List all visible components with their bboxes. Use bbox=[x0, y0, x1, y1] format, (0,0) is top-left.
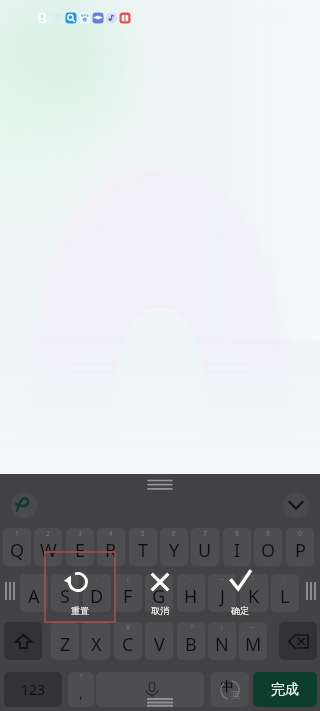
button[interactable]: Z bbox=[51, 622, 79, 660]
staticText: 7 bbox=[203, 529, 207, 538]
staticText: O bbox=[261, 538, 276, 563]
staticText: V bbox=[154, 632, 165, 657]
staticText: 取消 bbox=[151, 605, 169, 616]
staticText: M bbox=[245, 632, 262, 657]
staticText: A bbox=[28, 584, 40, 609]
button[interactable]: A bbox=[20, 574, 48, 612]
button[interactable]: 完成 bbox=[253, 672, 317, 707]
button[interactable]: V bbox=[145, 622, 173, 660]
staticText: 6 bbox=[172, 529, 176, 538]
staticText: Y bbox=[169, 538, 180, 563]
staticText: Z bbox=[60, 632, 71, 657]
button[interactable]: ! bbox=[208, 622, 236, 660]
staticText: P bbox=[295, 538, 306, 563]
staticText: F bbox=[123, 584, 133, 609]
staticText: · bbox=[96, 575, 98, 584]
staticText: Q bbox=[10, 538, 25, 563]
staticText: ? bbox=[190, 623, 193, 632]
button[interactable]: ? bbox=[177, 622, 205, 660]
staticText: · bbox=[190, 575, 192, 584]
staticText: C bbox=[122, 632, 134, 657]
button[interactable]: ! bbox=[114, 574, 142, 612]
staticText: W bbox=[40, 538, 57, 563]
staticText: · bbox=[284, 575, 286, 584]
button[interactable]: 5 bbox=[129, 528, 157, 566]
staticText: D bbox=[90, 584, 104, 609]
button[interactable]: Input method logo bbox=[11, 492, 37, 518]
button[interactable]: 9 bbox=[254, 528, 282, 566]
button[interactable]: 3 bbox=[66, 528, 94, 566]
staticText: E bbox=[75, 538, 86, 563]
button[interactable]: Space bbox=[96, 672, 204, 707]
staticText: S bbox=[60, 584, 70, 609]
button[interactable]: · bbox=[177, 574, 205, 612]
button[interactable]: 0 bbox=[286, 528, 314, 566]
staticText: I bbox=[234, 538, 241, 563]
button[interactable]: Backspace bbox=[279, 622, 317, 660]
button[interactable]: Cancel bbox=[140, 566, 180, 616]
button[interactable]: 2 bbox=[34, 528, 62, 566]
button[interactable]: 123 bbox=[4, 672, 62, 707]
staticText: ··· bbox=[250, 623, 256, 632]
staticText: 8 bbox=[235, 529, 239, 538]
staticText: 5 bbox=[141, 529, 145, 538]
staticText: 0 bbox=[298, 529, 302, 538]
button[interactable]: ° bbox=[68, 672, 94, 707]
staticText: 重置 bbox=[71, 605, 89, 616]
staticText: ! bbox=[127, 575, 129, 584]
button[interactable]: · bbox=[51, 574, 79, 612]
staticText: R bbox=[105, 538, 117, 563]
staticText: 1 bbox=[15, 529, 19, 538]
staticText: 3 bbox=[78, 529, 82, 538]
staticText: 中 bbox=[220, 678, 233, 694]
staticText: 2 bbox=[46, 529, 50, 538]
staticText: G bbox=[152, 584, 166, 609]
button[interactable]: Shift bbox=[4, 622, 42, 660]
button[interactable]: Reset bbox=[60, 566, 100, 616]
button[interactable]: · bbox=[240, 574, 268, 612]
button[interactable]: · bbox=[271, 574, 299, 612]
button[interactable]: Confirm bbox=[220, 566, 260, 616]
button[interactable]: Switch Chinese English bbox=[211, 672, 249, 707]
button[interactable]: ··· bbox=[239, 622, 267, 660]
staticText: U bbox=[198, 538, 212, 563]
staticText: K bbox=[248, 584, 260, 609]
staticText: ~ bbox=[220, 575, 224, 584]
staticText: 123 bbox=[21, 680, 46, 699]
staticText: L bbox=[280, 584, 290, 609]
button[interactable]: 4 bbox=[97, 528, 125, 566]
staticText: H bbox=[184, 584, 198, 609]
staticText: 英 bbox=[231, 689, 240, 700]
staticText: ° bbox=[80, 673, 83, 682]
button[interactable]: X bbox=[82, 622, 110, 660]
staticText: · bbox=[158, 575, 160, 584]
staticText: J bbox=[220, 584, 225, 609]
button[interactable]: 1 bbox=[3, 528, 31, 566]
staticText: 4 bbox=[109, 529, 113, 538]
button[interactable]: ~ bbox=[208, 574, 236, 612]
button[interactable]: # bbox=[114, 622, 142, 660]
button[interactable]: 6 bbox=[160, 528, 188, 566]
staticText: B bbox=[185, 632, 197, 657]
staticText: N bbox=[215, 632, 229, 657]
button[interactable]: 8 bbox=[223, 528, 251, 566]
staticText: ! bbox=[221, 623, 223, 632]
button[interactable]: 7 bbox=[191, 528, 219, 566]
staticText: · bbox=[253, 575, 255, 584]
staticText: 确定 bbox=[231, 605, 249, 616]
staticText: · bbox=[64, 575, 66, 584]
staticText: 完成 bbox=[271, 681, 299, 699]
staticText: X bbox=[91, 632, 102, 657]
staticText: 9 bbox=[266, 529, 270, 538]
button[interactable]: · bbox=[83, 574, 111, 612]
staticText: # bbox=[126, 623, 131, 632]
staticText: T bbox=[138, 538, 149, 563]
button[interactable]: Collapse keyboard bbox=[283, 492, 309, 518]
staticText: , bbox=[79, 682, 84, 702]
button[interactable]: · bbox=[145, 574, 173, 612]
